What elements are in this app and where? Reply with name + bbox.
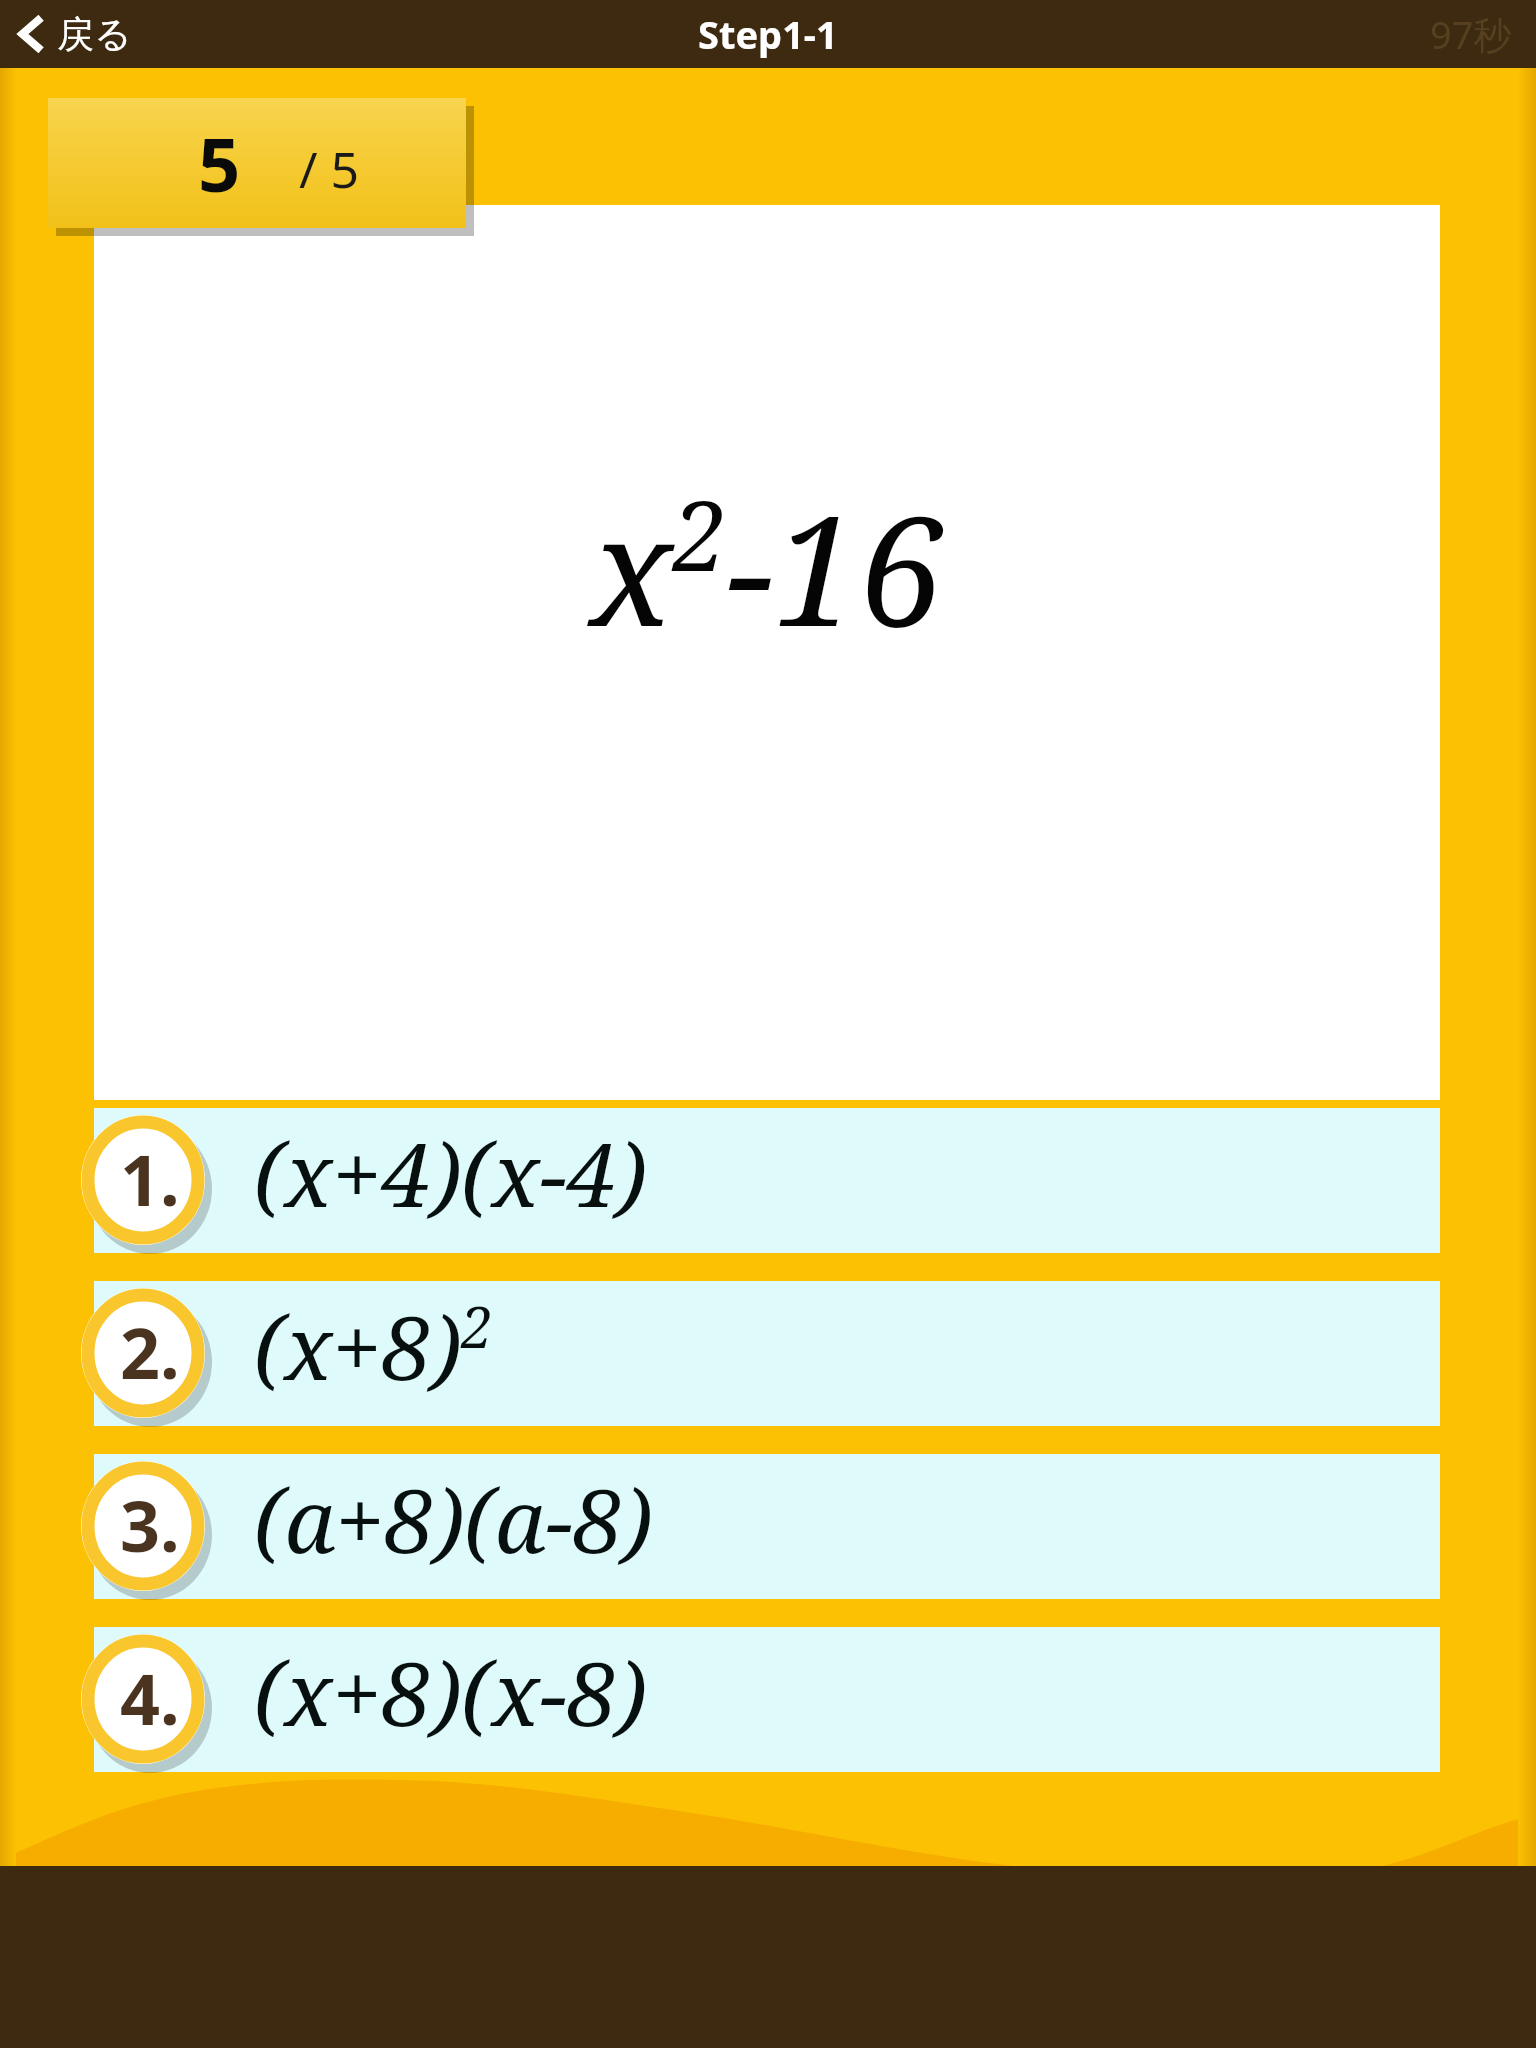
staticText: / 5 [299, 135, 360, 203]
button[interactable]: 戻る [0, 0, 152, 68]
staticText: 2. [120, 1304, 180, 1399]
staticText: 3. [120, 1477, 180, 1572]
button[interactable]: Choice 4. [76, 1629, 210, 1769]
button[interactable]: Choice 2. [76, 1283, 210, 1423]
button[interactable]: (x+8)2 [94, 1281, 1440, 1426]
staticText: (x+4)(x-4) [254, 1113, 647, 1233]
button[interactable]: Choice 1. [76, 1110, 210, 1250]
button[interactable]: 5 [48, 98, 466, 228]
staticText: (x+8)2 [254, 1286, 493, 1406]
button[interactable]: Choice 3. [76, 1456, 210, 1596]
button[interactable]: (a+8)(a-8) [94, 1454, 1440, 1599]
staticText: 5 [198, 113, 241, 214]
staticText: 4. [120, 1650, 180, 1745]
staticText: 戻る [57, 11, 132, 58]
staticText: Step1-1 [698, 8, 838, 60]
button[interactable]: (x+4)(x-4) [94, 1108, 1440, 1253]
staticText: 1. [120, 1131, 180, 1226]
staticText: (a+8)(a-8) [254, 1459, 653, 1579]
staticText: x2-16 [590, 464, 944, 671]
staticText: 97秒 [1430, 8, 1512, 60]
button[interactable]: (x+8)(x-8) [94, 1627, 1440, 1772]
staticText: (x+8)(x-8) [254, 1632, 647, 1752]
